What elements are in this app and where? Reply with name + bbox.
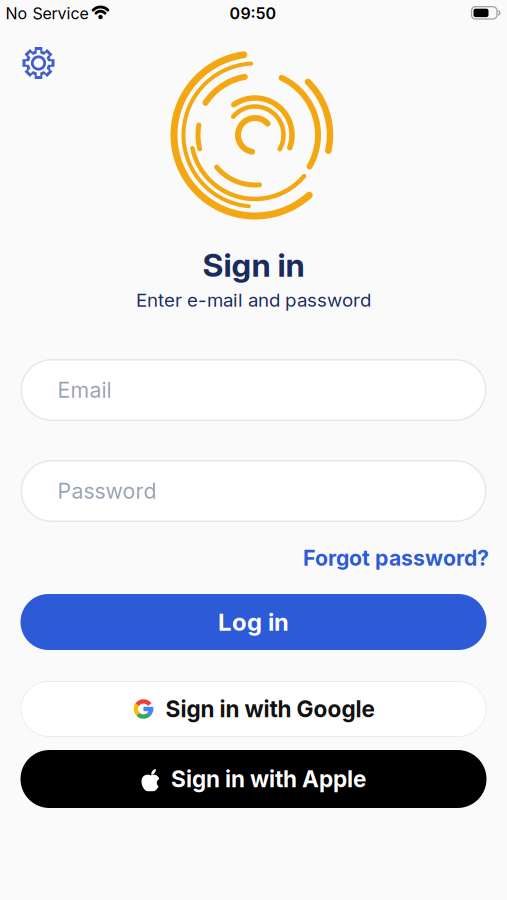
staticText: Password	[57, 478, 156, 504]
staticText: Email	[57, 377, 111, 403]
staticText: Enter e-mail and password	[136, 289, 371, 311]
staticText: Log in	[218, 608, 289, 636]
button[interactable]: Log in	[20, 594, 486, 650]
staticText: Sign in	[202, 246, 304, 284]
staticText: Sign in with Apple	[171, 766, 366, 792]
staticText: 09:50	[229, 4, 276, 23]
staticText: Sign in with Google	[165, 696, 374, 722]
button[interactable]: Sign in with Google	[20, 681, 486, 737]
staticText: Forgot password?	[303, 545, 489, 571]
button[interactable]: Forgot password?	[303, 545, 489, 571]
button[interactable]: Sign in with Apple	[20, 750, 486, 808]
staticText: No Service	[5, 4, 88, 23]
button[interactable]: Settings	[19, 44, 57, 82]
